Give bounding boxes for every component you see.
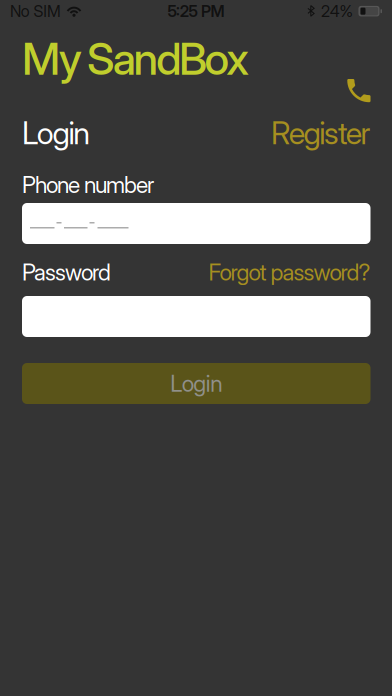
staticText: Forgot password?: [208, 258, 370, 286]
staticText: Phone number: [22, 171, 154, 198]
staticText: Register: [271, 114, 370, 152]
staticText: 5:25 PM: [167, 1, 225, 21]
staticText: 24%: [321, 1, 353, 21]
staticText: Password: [22, 258, 111, 286]
staticText: Login: [22, 114, 90, 152]
staticText: My SandBox: [22, 32, 249, 85]
staticText: No SIM: [10, 1, 61, 21]
staticText: Login: [170, 370, 222, 397]
